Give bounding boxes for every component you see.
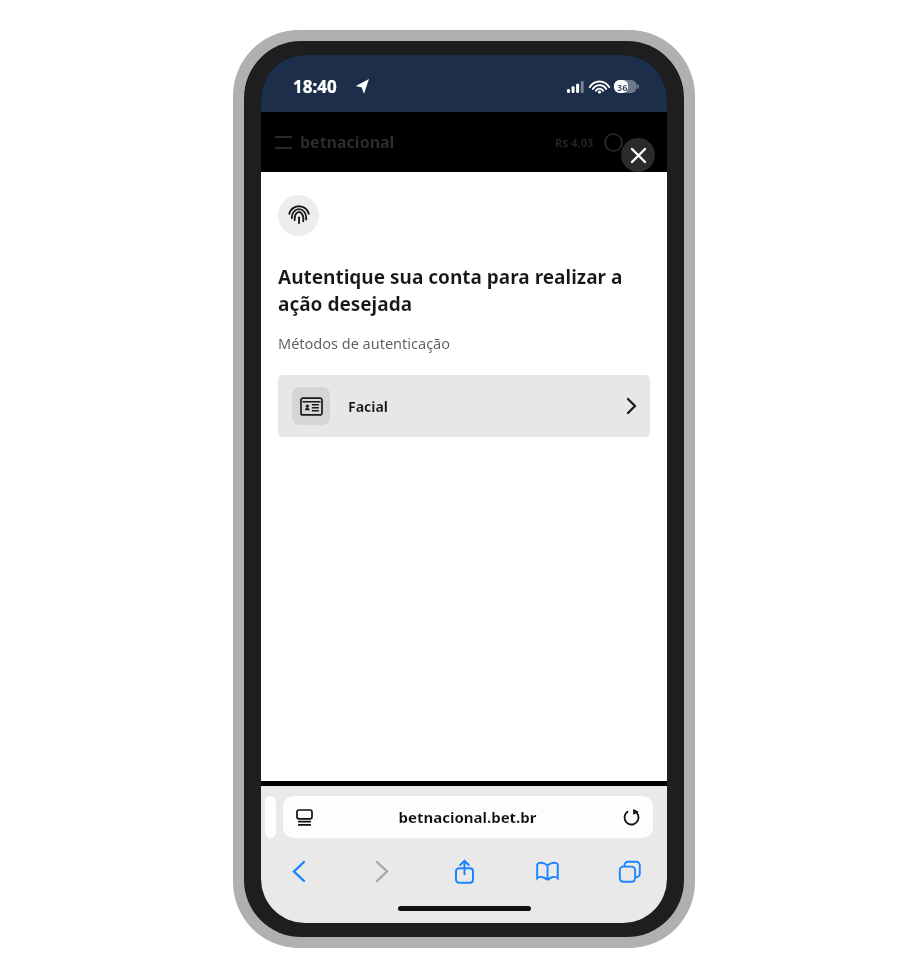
staticText: Facial — [348, 397, 389, 416]
button[interactable]: Avançar — [360, 850, 404, 892]
other: Tamanho do texto — [296, 809, 313, 826]
button[interactable]: Voltar — [277, 850, 321, 892]
button[interactable]: Facial — [278, 375, 650, 437]
staticText: 36 — [617, 81, 628, 93]
button[interactable]: Compartilhar — [442, 850, 486, 892]
staticText: betnacional — [300, 131, 395, 153]
staticText: R$ 4,03 — [555, 135, 594, 150]
button[interactable]: Fechar — [621, 138, 655, 172]
staticText: Autentique sua conta para realizar a açã… — [278, 264, 650, 317]
button[interactable]: Tamanho do texto — [283, 796, 653, 838]
staticText: betnacional.bet.br — [398, 807, 537, 827]
staticText: Métodos de autenticação — [278, 333, 451, 353]
other: Recarregar — [623, 809, 640, 826]
button[interactable]: Favoritos — [525, 850, 569, 892]
button[interactable]: Abas — [607, 850, 651, 892]
staticText: 18:40 — [293, 75, 337, 98]
